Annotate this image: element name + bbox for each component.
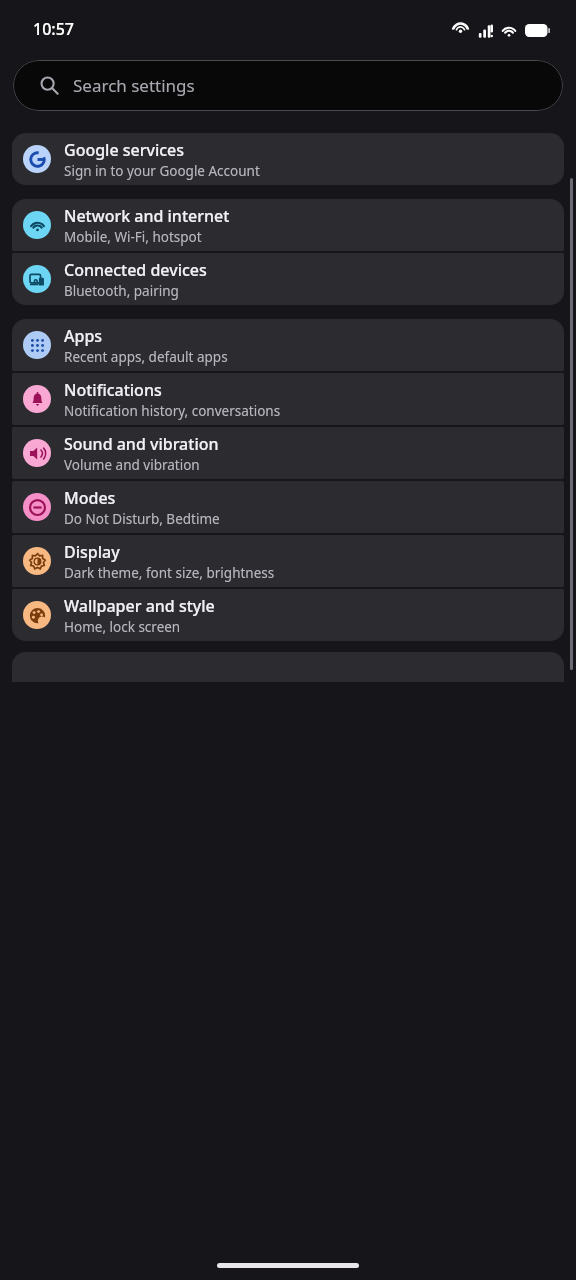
staticText: Sign in to your Google Account — [64, 162, 260, 180]
staticText: Connected devices — [64, 259, 207, 281]
staticText: Sound and vibration — [64, 433, 219, 455]
button[interactable]: Modes — [12, 481, 564, 533]
button[interactable]: Wallpaper and style — [12, 589, 564, 641]
button[interactable]: Notifications — [12, 373, 564, 425]
button[interactable]: Connected devices — [12, 253, 564, 305]
staticText: Home, lock screen — [64, 618, 181, 636]
staticText: Bluetooth, pairing — [64, 282, 179, 300]
staticText: Mobile, Wi-Fi, hotspot — [64, 228, 202, 246]
staticText: Display — [64, 541, 120, 563]
button[interactable]: Sound and vibration — [12, 427, 564, 479]
staticText: Notification history, conversations — [64, 402, 281, 420]
staticText: Search settings — [73, 74, 195, 97]
staticText: Apps — [64, 325, 103, 347]
button[interactable]: Display — [12, 535, 564, 587]
button[interactable]: Search settings — [13, 60, 563, 111]
button[interactable]: Google services — [12, 133, 564, 185]
staticText: Modes — [64, 487, 116, 509]
staticText: Notifications — [64, 379, 162, 401]
staticText: Do Not Disturb, Bedtime — [64, 510, 220, 528]
staticText: Google services — [64, 139, 185, 161]
staticText: 10:57 — [33, 18, 74, 40]
staticText: Volume and vibration — [64, 456, 200, 474]
button[interactable]: Apps — [12, 319, 564, 371]
staticText: Network and internet — [64, 205, 230, 227]
staticText: Dark theme, font size, brightness — [64, 564, 275, 582]
staticText: Wallpaper and style — [64, 595, 215, 617]
button[interactable]: Network and internet — [12, 199, 564, 251]
staticText: Recent apps, default apps — [64, 348, 228, 366]
